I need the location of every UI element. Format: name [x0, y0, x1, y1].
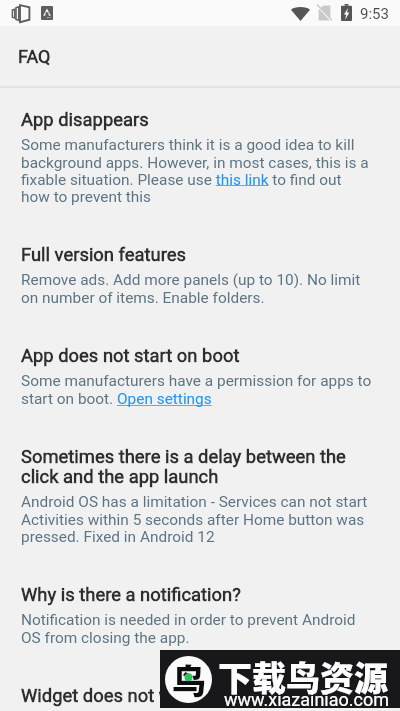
- staticText: www.xiazainiao.com: [224, 689, 390, 710]
- staticText: App does not start on boot: [21, 345, 240, 367]
- staticText: 鸟: [172, 656, 206, 702]
- staticText: Some manufacturers think it is a good id…: [21, 136, 372, 206]
- other: Input method: [41, 6, 53, 20]
- staticText: 9:53: [360, 5, 389, 23]
- button[interactable]: Why is there a notification?: [21, 584, 372, 647]
- staticText: Remove ads. Add more panels (up to 10). …: [21, 271, 372, 307]
- staticText: 下载鸟资源: [218, 652, 388, 701]
- staticText: Widget does not work: [21, 685, 199, 707]
- button[interactable]: Sometimes there is a delay between the c…: [21, 446, 372, 546]
- staticText: Full version features: [21, 244, 186, 266]
- staticText: Android OS has a limitation - Services c…: [21, 493, 372, 546]
- staticText: FAQ: [18, 46, 51, 67]
- other: Multi window: [10, 4, 30, 23]
- button[interactable]: App disappears: [21, 109, 372, 206]
- staticText: Why is there a notification?: [21, 584, 241, 606]
- staticText: Some manufacturers have a permission for…: [21, 372, 372, 408]
- button[interactable]: App does not start on boot: [21, 345, 372, 408]
- staticText: App disappears: [21, 109, 149, 131]
- button[interactable]: Full version features: [21, 244, 372, 307]
- staticText: Sometimes there is a delay between the c…: [21, 446, 372, 488]
- staticText: Notification is needed in order to preve…: [21, 611, 372, 647]
- button[interactable]: Widget does not work: [21, 685, 372, 711]
